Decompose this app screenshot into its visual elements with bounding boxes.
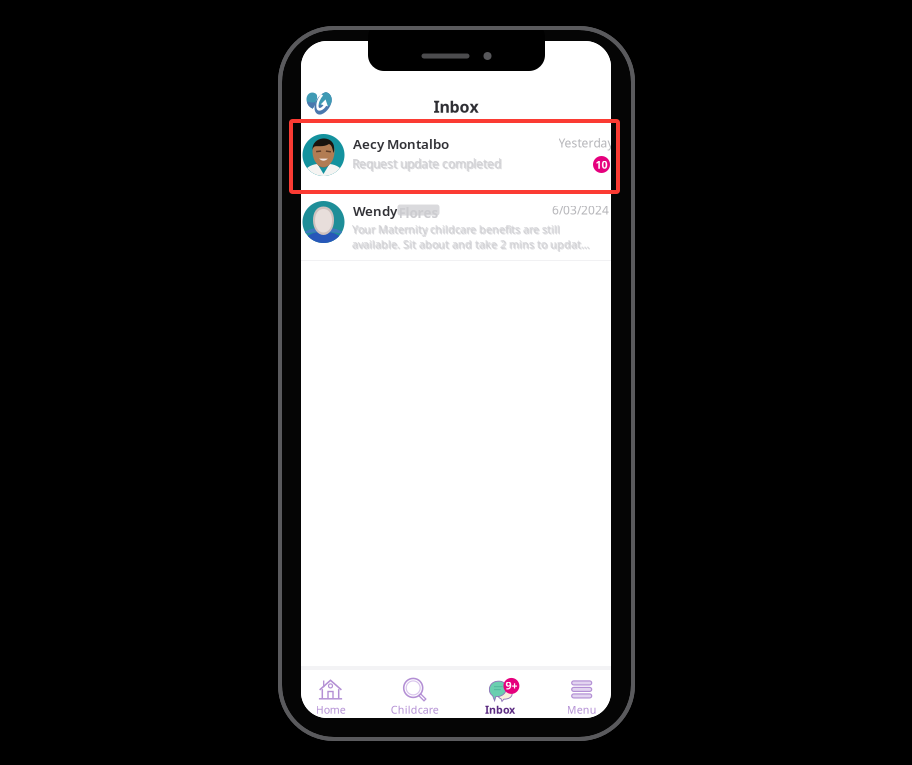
button[interactable]: Aecy Montalbo — [301, 121, 611, 191]
button[interactable]: 9+ — [469, 675, 531, 719]
button[interactable]: Wendy — [301, 191, 611, 261]
staticText: Your Maternity childcare benefits are st… — [352, 222, 560, 237]
button[interactable]: Menu — [551, 675, 613, 719]
staticText: Childcare — [391, 702, 439, 717]
staticText: available. Sit about and take 2 mins to … — [352, 237, 589, 251]
staticText: Home — [316, 702, 346, 717]
staticText: Inbox — [433, 96, 478, 117]
staticText: 6/03/2024 — [552, 202, 609, 218]
staticText: Flores — [398, 204, 438, 222]
staticText: 9+ — [505, 678, 517, 692]
staticText: Your Maternity childcare benefits are st… — [352, 222, 560, 236]
staticText: Inbox — [485, 702, 515, 717]
staticText: Menu — [567, 702, 597, 717]
staticText: Request update completed — [352, 156, 501, 172]
button[interactable]: Childcare — [384, 675, 446, 719]
button[interactable]: Home — [304, 89, 335, 118]
staticText: Wendy — [353, 202, 397, 220]
button[interactable]: Home — [300, 675, 362, 719]
staticText: available. Sit about and take 2 mins to … — [352, 237, 589, 252]
staticText: Your Maternity childcare benefits are st… — [353, 223, 561, 237]
staticText: Request update completed — [353, 157, 502, 173]
staticText: 10 — [595, 157, 607, 172]
staticText: Yesterday — [558, 135, 613, 151]
staticText: available. Sit about and take 2 mins to … — [353, 238, 590, 252]
staticText: Aecy Montalbo — [353, 135, 449, 153]
staticText: Request update completed — [352, 155, 501, 171]
